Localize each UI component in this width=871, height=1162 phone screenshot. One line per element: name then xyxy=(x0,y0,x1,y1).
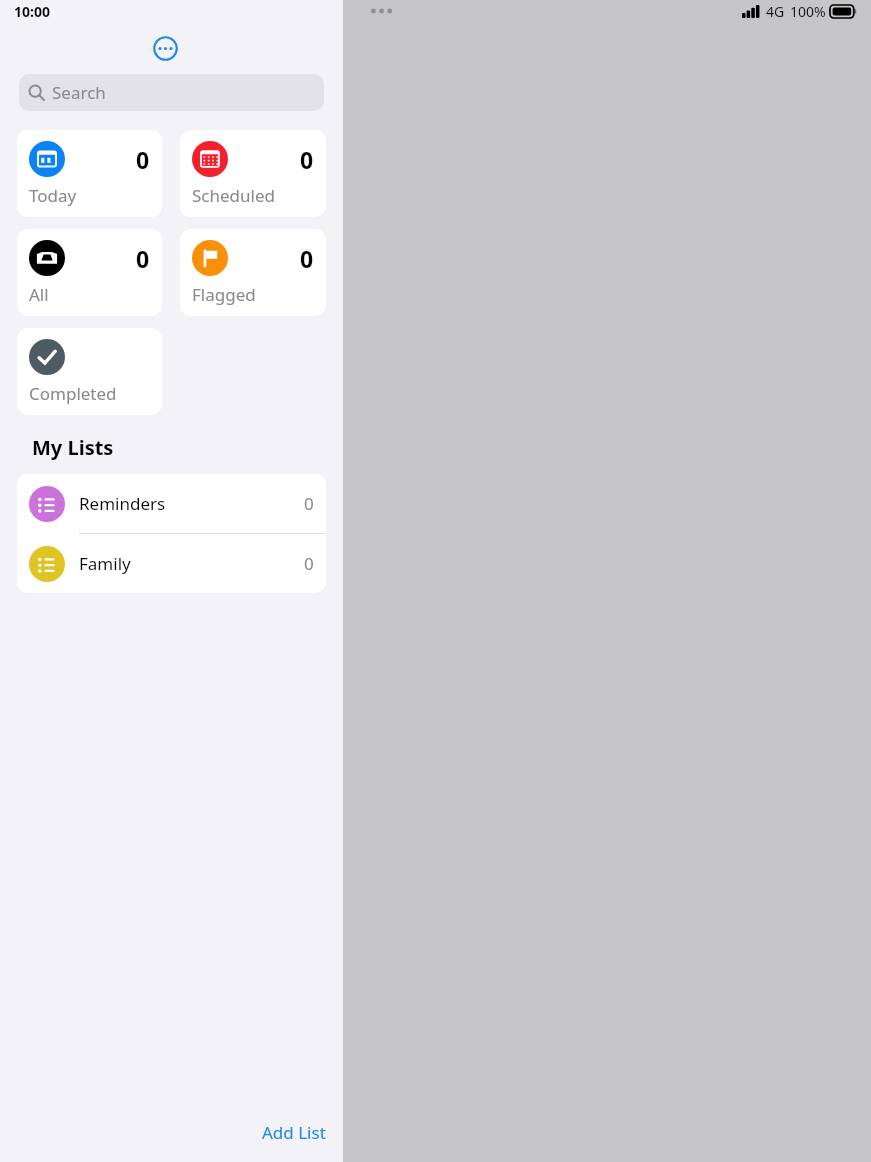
button[interactable]: Family xyxy=(17,534,326,593)
button[interactable]: 0 xyxy=(180,229,326,316)
staticText: Reminders xyxy=(79,492,166,515)
button[interactable]: Completed xyxy=(17,328,162,415)
staticText: Flagged xyxy=(192,283,256,306)
staticText: My Lists xyxy=(32,434,114,461)
staticText: 0 xyxy=(304,552,314,575)
staticText: 0 xyxy=(300,144,314,175)
staticText: 0 xyxy=(136,144,150,175)
staticText: Today xyxy=(29,184,77,207)
staticText: 100% xyxy=(790,2,826,21)
staticText: Completed xyxy=(29,382,117,405)
button[interactable]: 0 xyxy=(180,130,326,217)
staticText: 0 xyxy=(304,492,314,515)
staticText: All xyxy=(29,283,49,306)
staticText: 0 xyxy=(136,243,150,274)
button[interactable]: 0 xyxy=(17,130,162,217)
staticText: 10:00 xyxy=(14,2,50,21)
staticText: 4G xyxy=(766,2,785,21)
button[interactable]: Search xyxy=(19,74,324,111)
staticText: Scheduled xyxy=(192,184,275,207)
staticText: Search xyxy=(52,81,106,104)
button[interactable]: Reminders xyxy=(17,474,326,534)
button[interactable]: More options xyxy=(145,28,185,68)
staticText: Add List xyxy=(262,1121,326,1144)
staticText: Family xyxy=(79,552,131,575)
button[interactable]: 0 xyxy=(17,229,162,316)
button[interactable]: Add List xyxy=(245,1111,343,1154)
staticText: 0 xyxy=(300,243,314,274)
